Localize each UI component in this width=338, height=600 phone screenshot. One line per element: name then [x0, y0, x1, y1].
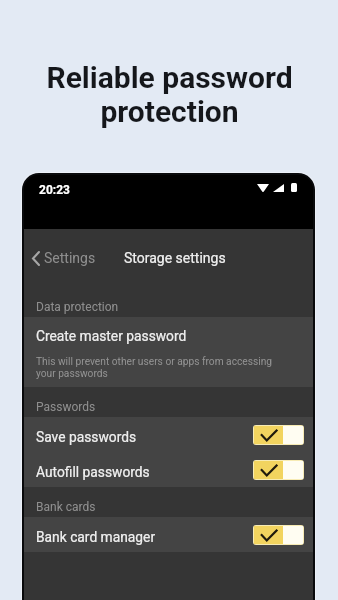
staticText: Create master password [36, 328, 187, 344]
button[interactable]: Toggle on [253, 460, 304, 480]
staticText: Settings [44, 250, 96, 266]
button[interactable]: Create master password [24, 317, 313, 387]
button[interactable]: Settings [24, 243, 104, 273]
button[interactable]: Autofill passwords [24, 452, 313, 487]
staticText: Passwords [36, 400, 96, 414]
staticText: This will prevent other users or apps fr… [36, 356, 279, 380]
button[interactable]: Bank card manager [24, 517, 313, 552]
button[interactable]: Toggle on [253, 425, 304, 445]
staticText: Reliable password protection [46, 60, 293, 129]
staticText: Storage settings [124, 250, 226, 266]
staticText: Autofill passwords [36, 464, 150, 480]
button[interactable]: Toggle on [253, 525, 304, 545]
staticText: Bank card manager [36, 529, 156, 545]
staticText: 20:23 [39, 183, 70, 197]
staticText: Bank cards [36, 500, 96, 514]
staticText: Data protection [36, 300, 119, 314]
staticText: Save passwords [36, 429, 137, 445]
button[interactable]: Save passwords [24, 417, 313, 452]
